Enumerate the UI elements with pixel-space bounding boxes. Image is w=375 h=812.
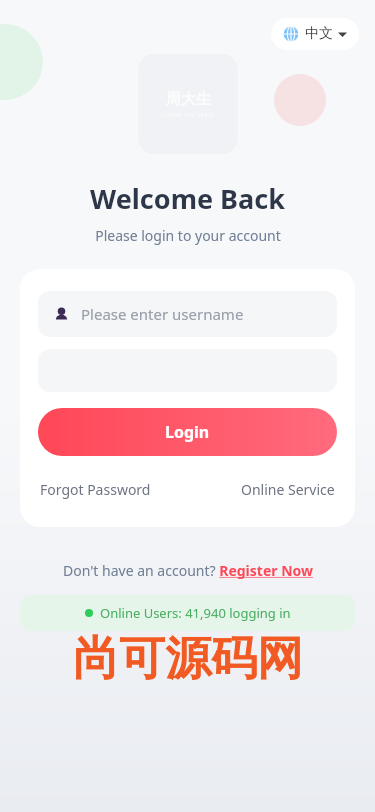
staticText: Online Users: 41,940 logging in [100, 604, 291, 622]
staticText: Welcome Back [90, 180, 285, 217]
staticText: 尚可源码网 [73, 630, 303, 688]
button[interactable]: Please enter username [38, 291, 337, 337]
staticText: Please enter username [81, 304, 244, 324]
staticText: Please login to your account [95, 226, 281, 245]
button[interactable]: Forgot Password [38, 478, 153, 501]
button[interactable]: Don't have an account? Register Now [59, 559, 317, 582]
staticText: 周大生 [166, 90, 211, 109]
button[interactable]: Login [38, 408, 337, 456]
staticText: Don't have an account? Register Now [63, 561, 313, 580]
button[interactable]: Online Service [239, 478, 337, 501]
button[interactable]: 中文 [271, 18, 359, 50]
staticText: Login [165, 421, 210, 443]
staticText: Forgot Password [40, 480, 151, 499]
staticText: Online Service [241, 480, 335, 499]
staticText: 中文 [305, 25, 333, 43]
